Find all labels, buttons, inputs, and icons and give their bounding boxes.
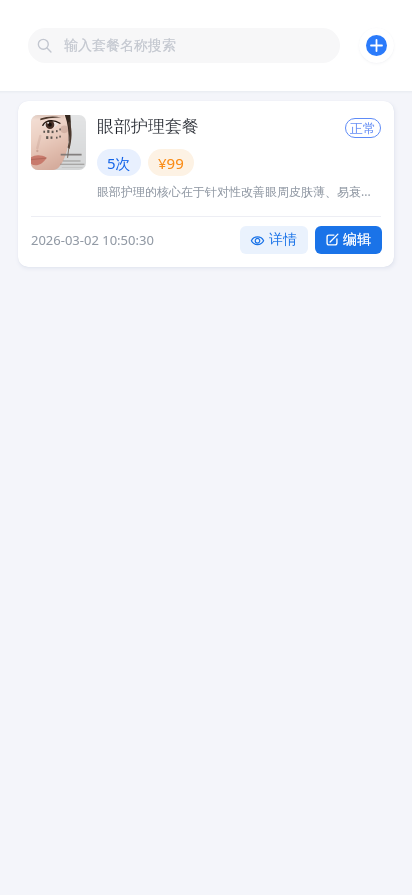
staticText: 2026-03-02 10:50:30: [31, 231, 154, 249]
button[interactable]: 输入套餐名称搜索: [28, 28, 340, 63]
staticText: 正常: [350, 120, 376, 136]
button[interactable]: 编辑: [315, 226, 382, 254]
staticText: 5次: [107, 153, 131, 173]
button[interactable]: 详情: [240, 226, 308, 254]
staticText: 编辑: [343, 231, 371, 249]
staticText: 详情: [269, 231, 297, 249]
staticText: ¥99: [158, 153, 184, 173]
button[interactable]: 眼部护理套餐: [18, 101, 394, 267]
button[interactable]: Add package: [359, 28, 394, 63]
staticText: 输入套餐名称搜索: [64, 37, 176, 55]
staticText: 眼部护理套餐: [97, 116, 199, 137]
staticText: 眼部护理的核心在于针对性改善眼周皮肤薄、易衰...: [97, 183, 371, 199]
